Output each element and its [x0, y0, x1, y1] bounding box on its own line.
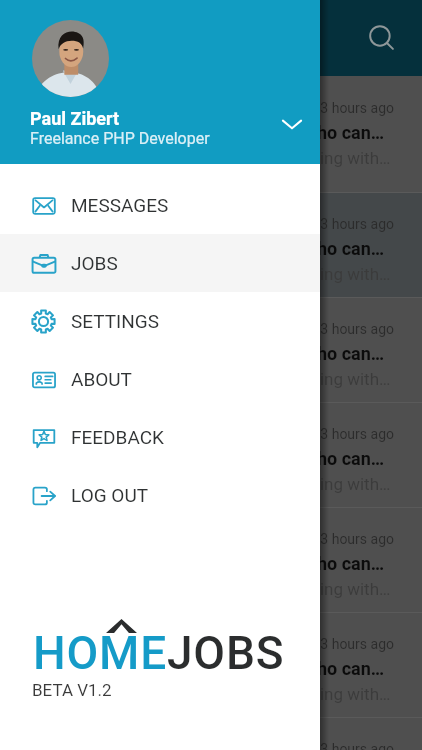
staticText: Posted 3 hours ago [273, 426, 394, 442]
button[interactable]: Posted 3 hours ago [0, 298, 422, 402]
button[interactable]: FEEDBACK [0, 408, 320, 466]
button[interactable]: Posted 3 hours ago [0, 403, 422, 507]
staticText: Need a PHP developer who can… [118, 553, 385, 574]
staticText: Posted 3 hours ago [273, 321, 394, 337]
button[interactable]: Search [364, 20, 400, 56]
staticText: JOBS [71, 252, 118, 274]
staticText: Looking for a developer for working with… [76, 684, 391, 704]
staticText: Need a PHP developer who can… [118, 122, 385, 143]
staticText: Looking for a developer for working with… [76, 148, 391, 168]
button[interactable]: Posted 3 hours ago [0, 718, 422, 750]
staticText: Posted 3 hours ago [273, 741, 394, 750]
button[interactable]: Posted 3 hours ago [0, 613, 422, 717]
staticText: Posted 3 hours ago [273, 100, 394, 116]
staticText: BETA V1.2 [32, 680, 112, 700]
staticText: Looking for a developer for working with… [76, 579, 391, 599]
staticText: Looking for a developer for working with… [76, 369, 391, 389]
staticText: Posted 3 hours ago [273, 531, 394, 547]
button[interactable]: JOBS [0, 234, 320, 292]
staticText: JOBS [167, 626, 285, 680]
staticText: MESSAGES [71, 194, 169, 216]
staticText: ABOUT [71, 368, 132, 390]
button[interactable]: LOG OUT [0, 466, 320, 524]
staticText: FEEDBACK [71, 426, 164, 448]
staticText: Looking for a developer for working with… [76, 264, 391, 284]
staticText: Need a PHP developer who can… [118, 448, 385, 469]
staticText: Looking for a developer for working with… [76, 474, 391, 494]
staticText: HOME [33, 626, 167, 680]
button[interactable]: Posted 3 hours ago [0, 508, 422, 612]
staticText: Need a PHP developer who can… [118, 658, 385, 679]
button[interactable]: MESSAGES [0, 176, 320, 234]
button[interactable]: SETTINGS [0, 292, 320, 350]
button[interactable]: Posted 3 hours ago [0, 76, 422, 192]
staticText: SETTINGS [71, 310, 160, 332]
button[interactable]: Posted 3 hours ago [0, 193, 422, 297]
button[interactable]: ABOUT [0, 350, 320, 408]
staticText: Posted 3 hours ago [273, 216, 394, 232]
staticText: Freelance PHP Developer [30, 129, 210, 148]
staticText: Need a PHP developer who can… [118, 343, 385, 364]
staticText: Posted 3 hours ago [273, 636, 394, 652]
button[interactable]: Expand account [272, 104, 312, 144]
staticText: LOG OUT [71, 484, 149, 506]
staticText: Need a PHP developer who can… [118, 238, 385, 259]
staticText: Paul Zibert [30, 108, 120, 129]
